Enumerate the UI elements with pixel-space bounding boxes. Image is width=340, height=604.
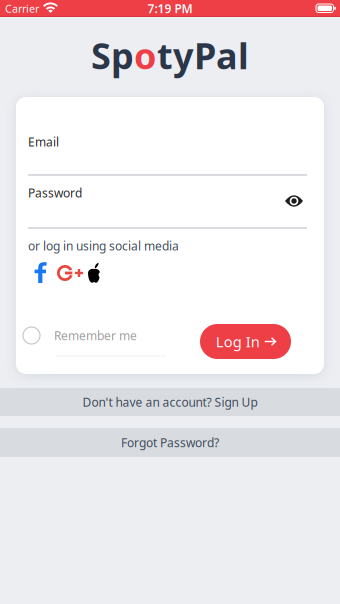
button[interactable]: Show password: [285, 194, 303, 207]
staticText: Remember me: [54, 327, 137, 343]
button[interactable]: Log In: [200, 324, 291, 359]
button[interactable]: Forgot Password?: [0, 428, 340, 457]
staticText: or log in using social media: [28, 238, 179, 254]
staticText: tyPal: [157, 31, 249, 79]
button[interactable]: Log in with Google: [57, 265, 83, 281]
staticText: o: [134, 31, 157, 79]
button[interactable]: Log in with Apple: [87, 262, 102, 283]
staticText: 7:19 PM: [147, 0, 192, 16]
staticText: Email: [28, 134, 59, 150]
button[interactable]: Don't have an account? Sign Up: [0, 388, 340, 416]
button[interactable]: Remember me: [23, 327, 137, 344]
button[interactable]: Log in with Facebook: [34, 262, 48, 283]
staticText: Password: [28, 185, 82, 201]
staticText: Don't have an account? Sign Up: [82, 394, 257, 410]
staticText: Sp: [91, 31, 134, 79]
staticText: Log In: [216, 332, 260, 351]
staticText: Carrier: [5, 1, 39, 16]
staticText: Forgot Password?: [121, 434, 219, 450]
